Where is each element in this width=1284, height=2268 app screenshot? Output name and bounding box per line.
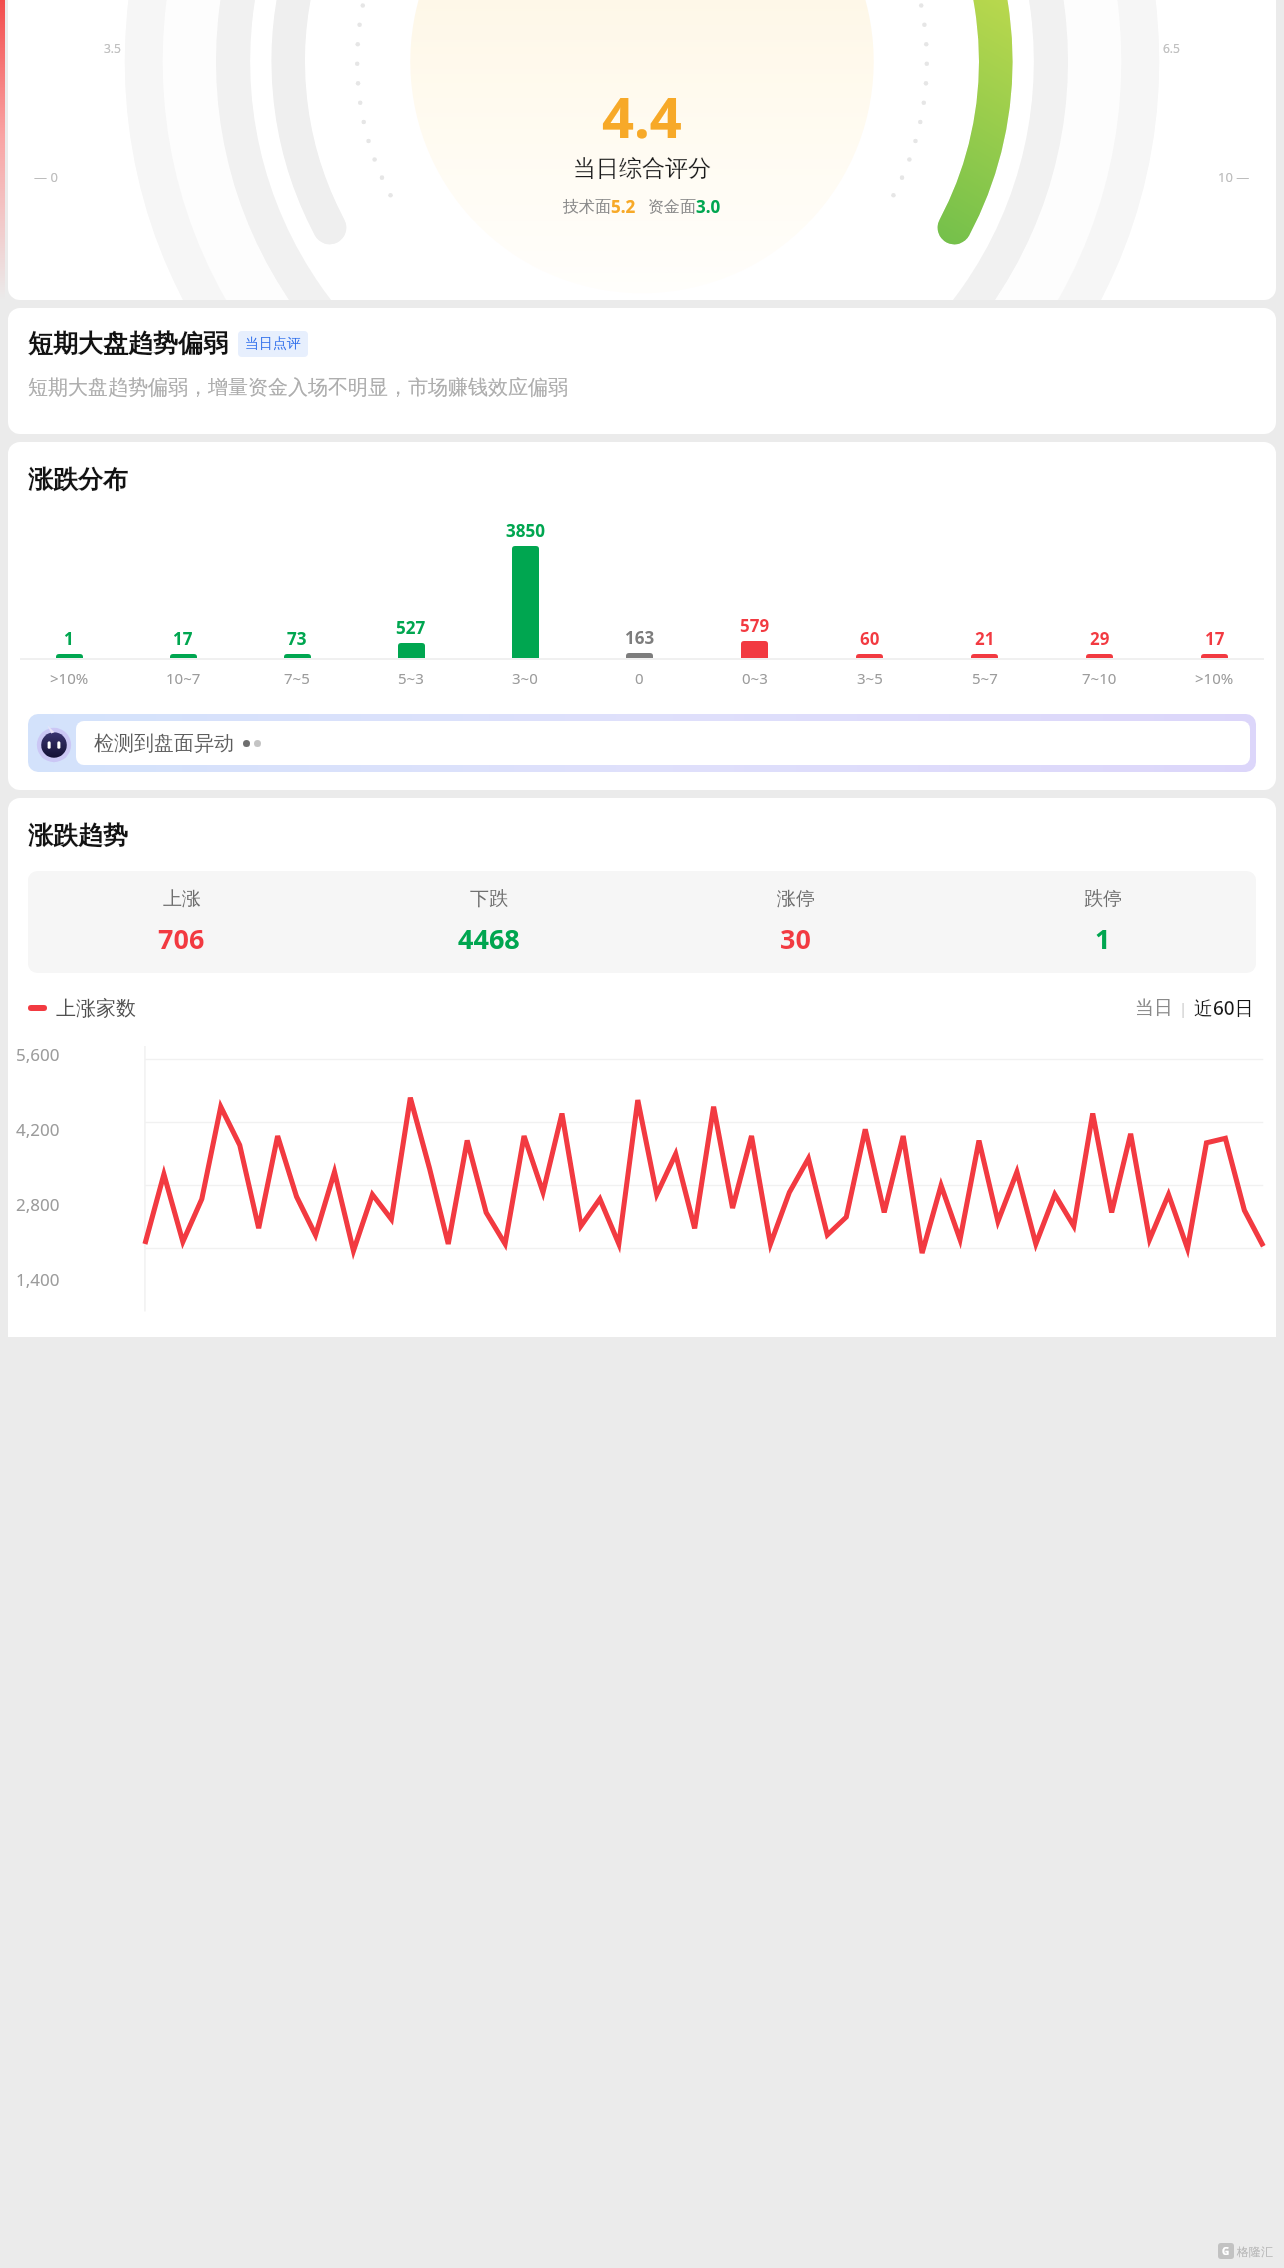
- staticText: 10 —: [1218, 168, 1250, 186]
- staticText: 短期大盘趋势偏弱: [28, 328, 228, 359]
- staticText: 527: [396, 616, 426, 639]
- staticText: 7~10: [1082, 668, 1117, 688]
- staticText: 579: [740, 614, 770, 637]
- staticText: 6.5: [1163, 40, 1180, 56]
- staticText: 当日: [1135, 996, 1173, 1020]
- staticText: |: [1175, 998, 1192, 1018]
- staticText: 5.2: [611, 195, 636, 218]
- staticText: 73: [287, 627, 307, 650]
- staticText: >10%: [50, 668, 89, 688]
- staticText: 涨停: [777, 887, 815, 911]
- staticText: 3~5: [857, 668, 883, 688]
- staticText: 17: [1205, 627, 1225, 650]
- staticText: >10%: [1195, 668, 1234, 688]
- staticText: 1: [1095, 920, 1111, 957]
- staticText: 当日点评: [245, 335, 301, 353]
- staticText: 706: [158, 920, 205, 957]
- staticText: 17: [173, 627, 193, 650]
- staticText: G: [1222, 2244, 1230, 2258]
- staticText: 涨跌分布: [28, 464, 128, 495]
- staticText: 4,200: [16, 1118, 60, 1141]
- staticText: 1,400: [16, 1268, 60, 1291]
- staticText: 30: [780, 920, 811, 957]
- staticText: 当日综合评分: [573, 154, 711, 183]
- staticText: 近60日: [1194, 995, 1254, 1021]
- button[interactable]: 近60日: [1192, 995, 1256, 1021]
- staticText: 涨跌趋势: [28, 820, 128, 851]
- staticText: 10~7: [166, 668, 201, 688]
- staticText: 21: [975, 627, 995, 650]
- staticText: 0: [635, 668, 644, 688]
- staticText: 资金面: [648, 197, 696, 217]
- staticText: 60: [860, 627, 880, 650]
- staticText: 5~3: [398, 668, 424, 688]
- staticText: 2,800: [16, 1193, 60, 1216]
- staticText: 上涨: [163, 887, 201, 911]
- staticText: 3~0: [512, 668, 538, 688]
- staticText: 7~5: [284, 668, 310, 688]
- staticText: 技术面: [563, 197, 611, 217]
- staticText: 3.5: [104, 40, 121, 56]
- staticText: 4.4: [602, 78, 682, 154]
- button[interactable]: 当日: [1133, 996, 1175, 1020]
- staticText: 29: [1090, 627, 1110, 650]
- staticText: 格隆汇: [1237, 2244, 1273, 2259]
- staticText: 4468: [458, 920, 520, 957]
- staticText: 163: [625, 626, 655, 649]
- staticText: 检测到盘面异动: [94, 731, 234, 756]
- staticText: — 0: [34, 168, 58, 186]
- button[interactable]: 短期大盘趋势偏弱: [8, 308, 1276, 434]
- staticText: 3.0: [696, 195, 721, 218]
- staticText: 0~3: [742, 668, 768, 688]
- staticText: 1: [64, 627, 74, 650]
- staticText: 5~7: [972, 668, 998, 688]
- staticText: 3850: [506, 519, 545, 542]
- staticText: 跌停: [1084, 887, 1122, 911]
- staticText: 5,600: [16, 1043, 60, 1066]
- button[interactable]: AI 异动检测: [28, 714, 1256, 772]
- staticText: 上涨家数: [56, 996, 136, 1021]
- staticText: 下跌: [470, 887, 508, 911]
- staticText: 短期大盘趋势偏弱，增量资金入场不明显，市场赚钱效应偏弱: [28, 375, 568, 400]
